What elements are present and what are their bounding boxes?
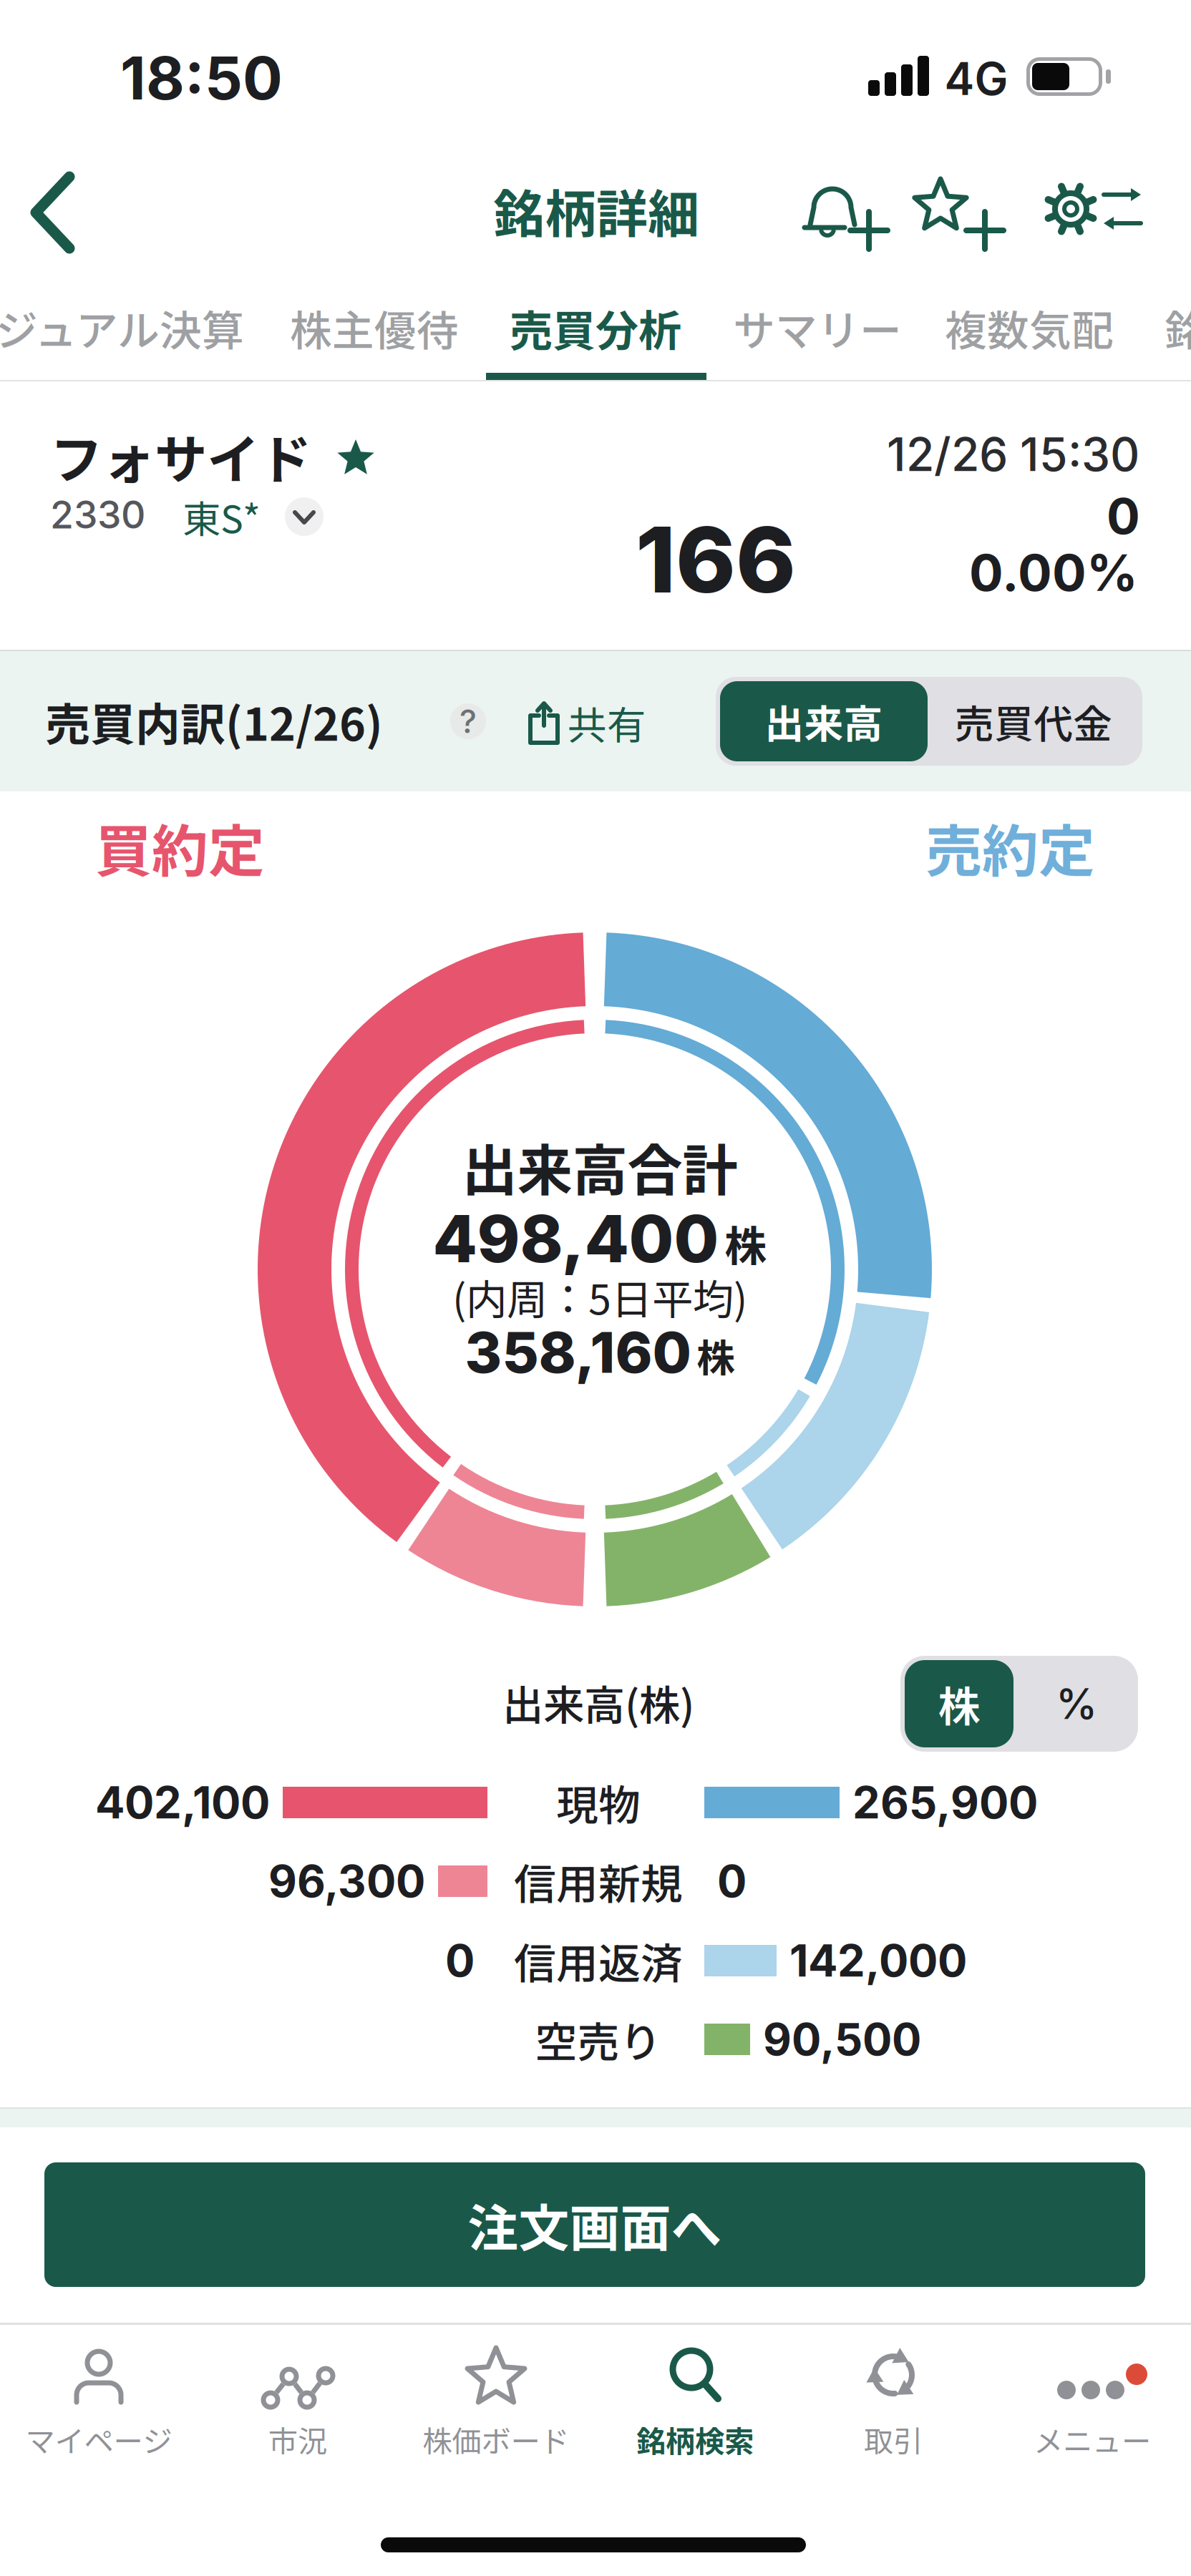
button[interactable]: サマリー	[0, 0, 169, 64]
staticText: 142,000	[789, 1934, 967, 1987]
button[interactable]: Market segment selector	[183, 483, 333, 550]
staticText: 0	[717, 1855, 747, 1908]
staticText: (内周：5日平均)	[452, 1267, 747, 1326]
staticText: 96,300	[268, 1855, 425, 1908]
button[interactable]: 株価ボード	[399, 2334, 593, 2470]
staticText: 2330	[50, 491, 145, 538]
staticText: 株	[697, 1328, 735, 1383]
staticText: 12/26 15:30	[887, 427, 1139, 482]
staticText: 株	[725, 1213, 767, 1274]
staticText: 90,500	[763, 2013, 921, 2066]
staticText: 株価ボード	[423, 2418, 569, 2461]
button[interactable]: 銘柄検索	[598, 2334, 792, 2470]
staticText: 取引	[864, 2418, 923, 2461]
staticText: 空売り	[535, 2009, 662, 2070]
staticText: 売買内訳(12/26)	[45, 689, 383, 754]
staticText: 18:50	[120, 42, 283, 114]
staticText: ?	[460, 702, 477, 741]
staticText: 銘柄	[1165, 297, 1191, 358]
staticText: 株主優待	[290, 297, 459, 358]
staticText: %	[1056, 1678, 1097, 1729]
staticText: 銘柄検索	[636, 2418, 754, 2461]
staticText: 売約定	[925, 806, 1095, 888]
staticText: 複数気配	[945, 297, 1114, 358]
staticText: 0.00%	[969, 542, 1138, 603]
button[interactable]: 売買代金	[926, 681, 1141, 761]
staticText: 498,400	[433, 1199, 719, 1278]
staticText: 0	[1107, 486, 1140, 546]
staticText: サマリー	[733, 297, 902, 358]
staticText: 出来高	[765, 693, 883, 750]
staticText: 4G	[944, 52, 1008, 106]
staticText: 402,100	[95, 1776, 270, 1829]
staticText: 現物	[556, 1772, 641, 1833]
button[interactable]: 株	[905, 1660, 1013, 1747]
button[interactable]: 注文画面へ	[44, 2162, 1145, 2287]
staticText: 信用返済	[514, 1930, 683, 1991]
staticText: 市況	[268, 2418, 327, 2461]
button[interactable]: 複数気配	[0, 0, 169, 64]
button[interactable]: 取引	[797, 2334, 990, 2470]
staticText: メニュー	[1034, 2418, 1151, 2461]
staticText: 166	[636, 505, 796, 614]
button[interactable]: 市況	[201, 2334, 394, 2470]
staticText: 買約定	[95, 806, 265, 888]
staticText: 株	[938, 1673, 980, 1734]
staticText: 共有	[568, 694, 646, 751]
button[interactable]: Back	[0, 0, 1191, 2576]
staticText: 売買分析	[510, 297, 681, 359]
staticText: 銘柄詳細	[493, 173, 699, 248]
button[interactable]: メニュー	[996, 2334, 1189, 2470]
staticText: マイページ	[25, 2418, 172, 2461]
button[interactable]: %	[1019, 1660, 1134, 1747]
staticText: ジュアル決算	[0, 297, 244, 358]
button[interactable]: マイページ	[2, 2334, 195, 2470]
button[interactable]: 出来高	[720, 681, 928, 761]
staticText: 出来高合計	[462, 1126, 738, 1206]
button[interactable]: 株主優待	[0, 0, 169, 64]
button[interactable]: Share	[0, 0, 1191, 2576]
button[interactable]: 売買分析	[0, 0, 172, 64]
staticText: 0	[445, 1934, 475, 1987]
staticText: 売買代金	[955, 693, 1112, 750]
staticText: 265,900	[852, 1776, 1038, 1829]
staticText: フォサイド	[50, 418, 311, 494]
staticText: 信用新規	[514, 1851, 683, 1912]
staticText: 出来高(株)	[502, 1673, 694, 1732]
button[interactable]: Help	[450, 703, 486, 739]
staticText: 358,160	[465, 1318, 691, 1386]
staticText: 注文画面へ	[468, 2188, 722, 2261]
button[interactable]: ジュアル決算	[0, 0, 248, 64]
staticText: 東S*	[183, 489, 261, 544]
